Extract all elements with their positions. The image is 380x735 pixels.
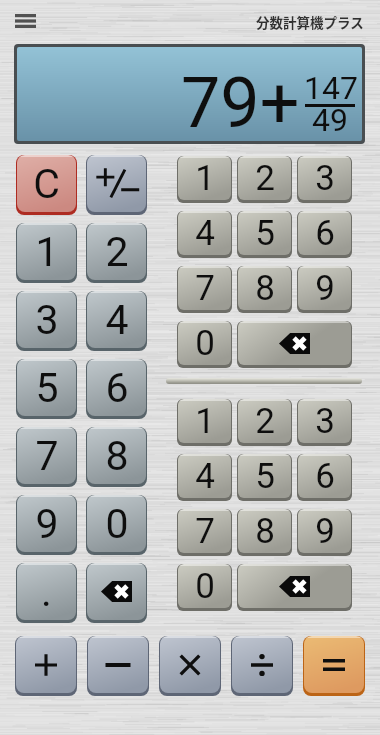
staticText: 1 <box>35 228 59 276</box>
staticText: 9 <box>315 511 335 552</box>
staticText: . <box>41 568 52 616</box>
staticText: C <box>33 160 60 208</box>
button[interactable]: 5 <box>237 211 292 258</box>
button[interactable]: 9 <box>16 495 77 555</box>
button[interactable]: 4 <box>177 211 232 258</box>
button[interactable]: Equals <box>303 636 365 696</box>
staticText: 3 <box>315 401 335 442</box>
staticText: 49 <box>312 101 348 139</box>
button[interactable]: 4 <box>86 291 147 351</box>
staticText: 8 <box>255 511 275 552</box>
staticText: 2 <box>105 228 129 276</box>
staticText: 5 <box>255 456 275 497</box>
button[interactable]: Plus <box>15 636 77 696</box>
button[interactable]: 7 <box>16 427 77 487</box>
staticText: 9 <box>315 268 335 309</box>
button[interactable]: 2 <box>237 399 292 446</box>
button[interactable]: 1 <box>177 399 232 446</box>
button[interactable]: 2 <box>237 156 292 203</box>
staticText: 3 <box>35 296 59 344</box>
staticText: 3 <box>315 158 335 199</box>
button[interactable]: 8 <box>237 509 292 556</box>
staticText: 2 <box>255 158 275 199</box>
staticText: 5 <box>255 213 275 254</box>
button[interactable]: Plus minus sign <box>86 155 147 215</box>
staticText: 147 <box>304 69 358 107</box>
staticText: 5 <box>35 364 59 412</box>
button[interactable]: 3 <box>297 399 352 446</box>
staticText: 1 <box>195 158 215 199</box>
staticText: 7 <box>195 268 215 309</box>
button[interactable]: 0 <box>177 564 232 611</box>
staticText: 4 <box>105 296 129 344</box>
button[interactable]: Backspace <box>86 563 147 623</box>
button[interactable]: Divide <box>231 636 293 696</box>
staticText: 79+ <box>181 62 300 144</box>
staticText: 6 <box>315 213 335 254</box>
button[interactable]: Minus <box>87 636 149 696</box>
button[interactable]: C <box>16 155 77 215</box>
button[interactable]: . <box>16 563 77 623</box>
staticText: 7 <box>195 511 215 552</box>
button[interactable]: Backspace <box>237 321 352 368</box>
staticText: 6 <box>105 364 129 412</box>
staticText: 0 <box>195 566 215 607</box>
staticText: 0 <box>105 500 129 548</box>
staticText: 1 <box>195 401 215 442</box>
button[interactable]: Menu <box>5 4 45 38</box>
staticText: 4 <box>195 213 215 254</box>
staticText: 分数計算機プラス <box>256 12 364 32</box>
button[interactable]: 7 <box>177 509 232 556</box>
button[interactable]: 6 <box>297 454 352 501</box>
button[interactable]: Backspace <box>237 564 352 611</box>
button[interactable]: 0 <box>86 495 147 555</box>
button[interactable]: 8 <box>86 427 147 487</box>
button[interactable]: 6 <box>86 359 147 419</box>
button[interactable]: 3 <box>297 156 352 203</box>
button[interactable]: 3 <box>16 291 77 351</box>
button[interactable]: 1 <box>177 156 232 203</box>
button[interactable]: 4 <box>177 454 232 501</box>
button[interactable]: 2 <box>86 223 147 283</box>
button[interactable]: 5 <box>16 359 77 419</box>
button[interactable]: 5 <box>237 454 292 501</box>
button[interactable]: 1 <box>16 223 77 283</box>
staticText: 7 <box>35 432 59 480</box>
staticText: 8 <box>105 432 129 480</box>
button[interactable]: 6 <box>297 211 352 258</box>
button[interactable]: 7 <box>177 266 232 313</box>
staticText: 2 <box>255 401 275 442</box>
staticText: 9 <box>35 500 59 548</box>
button[interactable]: 9 <box>297 266 352 313</box>
button[interactable]: 8 <box>237 266 292 313</box>
staticText: 4 <box>195 456 215 497</box>
staticText: 6 <box>315 456 335 497</box>
staticText: 0 <box>195 323 215 364</box>
button[interactable]: 9 <box>297 509 352 556</box>
button[interactable]: 0 <box>177 321 232 368</box>
button[interactable]: Multiply <box>159 636 221 696</box>
staticText: 8 <box>255 268 275 309</box>
